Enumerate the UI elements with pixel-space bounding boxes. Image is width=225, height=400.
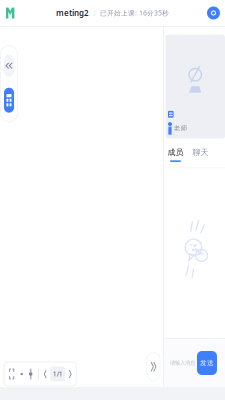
button[interactable]: Previous page (41, 363, 49, 385)
staticText: 老师 (174, 124, 188, 132)
button[interactable]: Zoom level (26, 363, 35, 384)
button[interactable]: 请输入消息 (170, 351, 195, 375)
button[interactable]: Home (0, 7, 20, 18)
button[interactable]: Change layout (4, 88, 14, 113)
staticText: 1/1 (53, 370, 63, 378)
button[interactable]: Next page (66, 363, 74, 385)
staticText: 请输入消息 (170, 360, 195, 366)
button[interactable]: Settings (207, 6, 225, 19)
button[interactable]: Collapse sidebar (4, 55, 14, 77)
button[interactable]: 1/1 (49, 367, 66, 381)
button[interactable]: Expand panel (147, 353, 160, 381)
button[interactable]: 发送 (197, 351, 217, 375)
staticText: meting2 (56, 8, 89, 18)
button[interactable]: Fit to screen (6, 363, 17, 384)
staticText: 发送 (200, 359, 214, 367)
staticText: 成员 (167, 147, 183, 157)
staticText: 已开始上课: 16分35秒 (100, 9, 169, 17)
button[interactable]: 聊天 (192, 147, 208, 162)
button[interactable]: 成员 (167, 147, 183, 162)
staticText: 聊天 (192, 147, 208, 157)
button[interactable]: Zoom out (17, 364, 26, 384)
